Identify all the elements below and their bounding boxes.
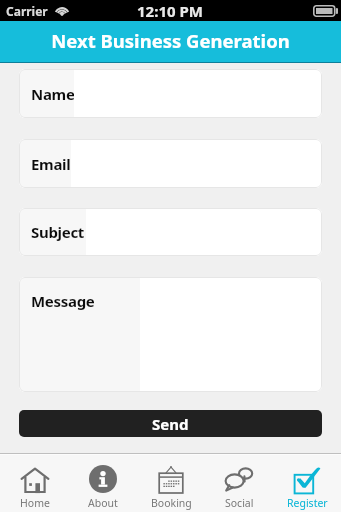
button[interactable]: Message [19, 277, 322, 392]
staticText: About [88, 496, 118, 510]
button[interactable]: Register [273, 455, 341, 512]
staticText: Send [152, 414, 189, 434]
staticText: Name [31, 84, 74, 104]
staticText: Register [287, 496, 328, 510]
button[interactable]: Send [19, 410, 322, 437]
button[interactable]: Booking [137, 455, 205, 512]
staticText: Next Business Generation [51, 28, 290, 53]
staticText: Booking [151, 496, 192, 510]
staticText: Message [31, 291, 95, 311]
staticText: Subject [31, 222, 85, 242]
staticText: Social [225, 496, 254, 510]
button[interactable]: Social [205, 455, 273, 512]
button[interactable]: Email [19, 139, 322, 188]
button[interactable]: About [69, 455, 137, 512]
staticText: Home [20, 496, 50, 510]
button[interactable]: Name [19, 69, 322, 118]
staticText: 12:10 PM [137, 1, 203, 21]
staticText: Carrier [6, 3, 48, 19]
staticText: Email [31, 154, 71, 174]
button[interactable]: Subject [19, 208, 322, 256]
button[interactable]: Home [0, 455, 69, 512]
